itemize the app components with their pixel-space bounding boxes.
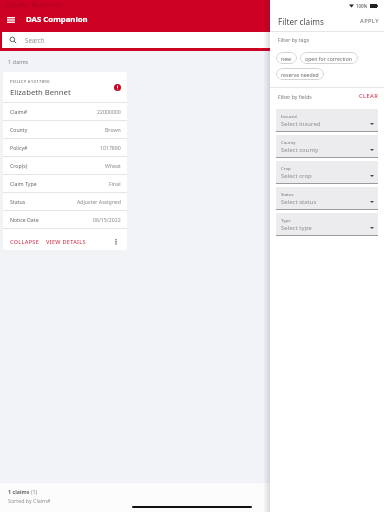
button[interactable]: Claim# [3,103,127,120]
staticText: COLLAPSE [10,238,40,245]
staticText: Claim# [10,108,28,115]
button[interactable]: reserve needed [276,68,324,80]
staticText: Filter by tags [278,36,310,43]
button[interactable]: APPLY [357,15,382,27]
staticText: CLEAR [359,92,379,100]
staticText: Wheat [105,162,121,169]
staticText: reserve needed [281,71,319,78]
button[interactable]: Crop [276,161,378,184]
button[interactable]: POLICY #1017890 [3,72,127,102]
button[interactable]: open for correction [300,52,358,64]
button[interactable]: County [276,135,378,158]
button[interactable]: Crop(s) [3,157,127,174]
staticText: County [10,126,28,133]
staticText: County [281,139,296,145]
staticText: Claim Type [10,180,37,187]
staticText: Adjuster Assigned [77,198,121,205]
staticText: 06/15/2022 [93,216,121,223]
staticText: 1 claims [8,58,29,65]
staticText: Insured [281,113,297,119]
button[interactable]: More options [109,235,122,248]
staticText: Search [25,36,45,44]
staticText: Select crop [281,172,312,180]
button[interactable]: Status [276,187,378,210]
staticText: Select insured [281,120,321,128]
staticText: 22000000 [97,108,121,115]
staticText: (1) [31,488,38,495]
button[interactable]: new [276,52,297,64]
button[interactable]: Search [2,32,270,48]
button[interactable]: Insured [276,109,378,132]
staticText: Select status [281,198,317,206]
staticText: Filter claims [278,16,324,27]
staticText: 3:25 PM Mon Jan 23 [6,1,62,9]
button[interactable]: Policy# [3,139,127,156]
button[interactable]: Menu [4,13,18,27]
staticText: Type [281,217,291,223]
button[interactable]: Type [276,213,378,236]
staticText: Select type [281,224,312,232]
staticText: Select county [281,146,319,154]
button[interactable]: Status [3,193,127,210]
button[interactable]: County [3,121,127,138]
staticText: Status [281,191,294,197]
button[interactable]: CLEAR [356,90,382,102]
staticText: Status [10,198,26,205]
staticText: Policy# [10,144,28,151]
staticText: DAS Companion [26,14,88,25]
staticText: Elizabeth Bennet [10,87,71,97]
button[interactable]: VIEW DETAILS [45,237,87,246]
staticText: Brown [105,126,121,133]
button[interactable]: Notice Date [3,211,127,228]
staticText: 1017890 [100,144,121,151]
staticText: Final [109,180,121,187]
staticText: Sorted by Claim# [8,497,51,504]
staticText: Crop [281,165,291,171]
button[interactable]: COLLAPSE [9,237,41,246]
staticText: open for correction [305,55,353,62]
button[interactable]: Claim Type [3,175,127,192]
staticText: Filter by fields [278,93,312,100]
staticText: 1 claims [8,488,31,495]
staticText: 100% [356,3,368,9]
staticText: APPLY [360,17,379,25]
staticText: Crop(s) [10,162,28,169]
staticText: VIEW DETAILS [46,238,86,245]
staticText: new [281,55,292,62]
staticText: Notice Date [10,216,39,223]
staticText: POLICY #1017890 [10,79,50,85]
